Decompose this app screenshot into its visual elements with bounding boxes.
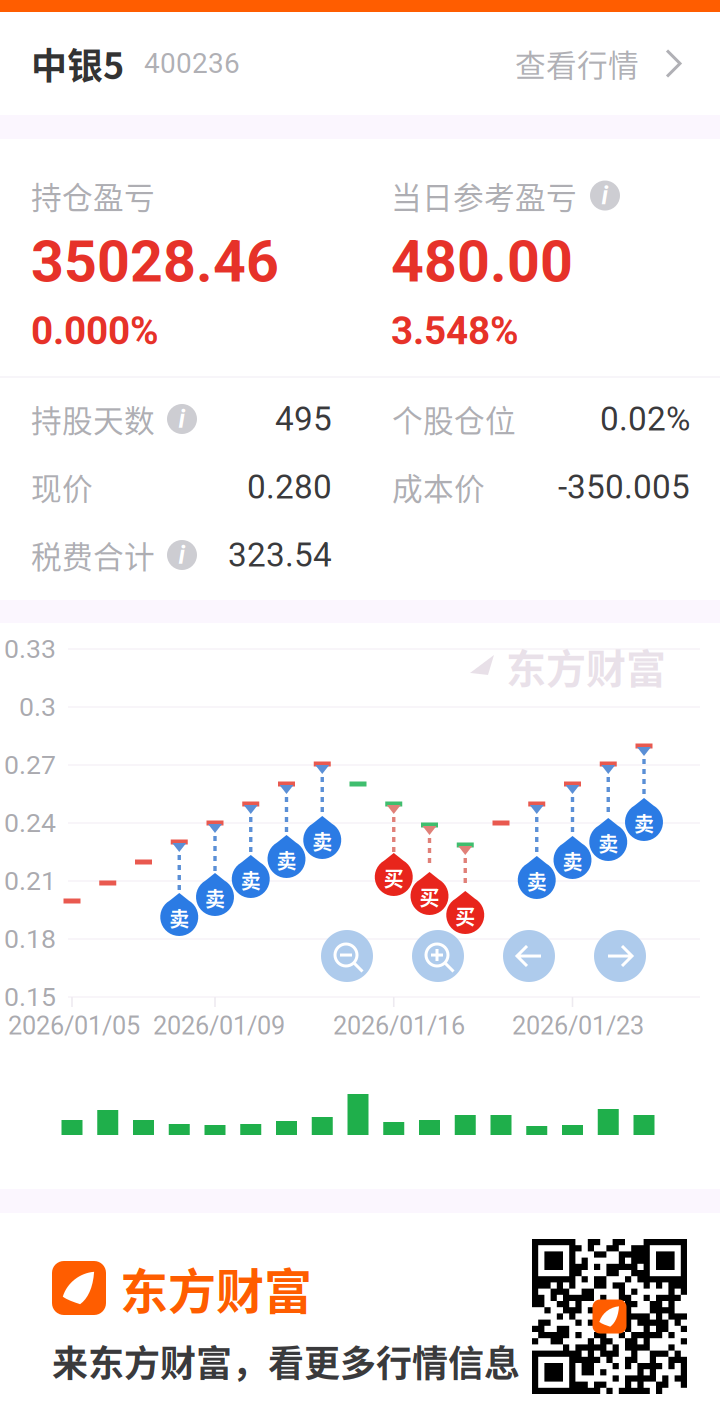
staticText: 持仓盈亏 (31, 173, 155, 218)
staticText: 0.24 (4, 807, 56, 839)
staticText: 卖 (312, 826, 332, 855)
button[interactable]: Zoom in (412, 930, 464, 982)
staticText: -350.005 (558, 467, 690, 507)
staticText: 0.33 (4, 633, 56, 665)
staticText: 卖 (169, 903, 189, 932)
staticText: 卖 (276, 845, 296, 874)
staticText: 卖 (527, 866, 547, 895)
staticText: 0.27 (4, 749, 56, 781)
staticText: 2026/01/23 (512, 1011, 644, 1041)
staticText: 卖 (562, 846, 582, 875)
staticText: 480.00 (391, 228, 573, 295)
staticText: 0.15 (4, 981, 56, 1013)
button[interactable]: 查看行情 (515, 23, 684, 104)
staticText: 当日参考盈亏 (391, 173, 577, 218)
staticText: 0.18 (4, 923, 56, 955)
staticText: 卖 (598, 828, 618, 857)
staticText: 2026/01/16 (333, 1011, 465, 1041)
staticText: 0.02% (600, 399, 690, 439)
staticText: 来东方财富，看更多行情信息 (52, 1335, 520, 1387)
staticText: 0.000% (31, 308, 159, 354)
button[interactable]: Previous (503, 930, 555, 982)
staticText: 323.54 (228, 535, 332, 575)
staticText: 买 (384, 863, 404, 892)
button[interactable]: Zoom out (321, 930, 373, 982)
staticText: 持股天数 (31, 397, 155, 441)
staticText: 中银5 (31, 37, 124, 89)
staticText: 买 (419, 882, 439, 911)
staticText: 东方财富 (506, 637, 666, 695)
staticText: 0.280 (247, 467, 332, 507)
staticText: 卖 (241, 865, 261, 894)
staticText: 2026/01/05 (8, 1011, 140, 1041)
staticText: i (178, 404, 185, 434)
staticText: 35028.46 (31, 228, 279, 295)
staticText: 400236 (144, 47, 240, 80)
staticText: 495 (275, 399, 332, 439)
staticText: 卖 (205, 883, 225, 912)
staticText: i (178, 540, 185, 570)
button[interactable]: Next (594, 930, 646, 982)
staticText: 查看行情 (515, 41, 639, 86)
staticText: 个股仓位 (392, 397, 516, 441)
staticText: 0.3 (19, 691, 56, 723)
staticText: 2026/01/09 (153, 1011, 285, 1041)
staticText: 0.21 (4, 865, 56, 897)
staticText: i (601, 181, 608, 210)
staticText: 买 (455, 901, 475, 930)
staticText: 东方财富 (120, 1253, 312, 1323)
staticText: 卖 (634, 808, 654, 837)
staticText: 成本价 (392, 465, 485, 509)
staticText: 现价 (31, 465, 93, 509)
staticText: 3.548% (391, 308, 519, 354)
staticText: 税费合计 (31, 533, 155, 577)
